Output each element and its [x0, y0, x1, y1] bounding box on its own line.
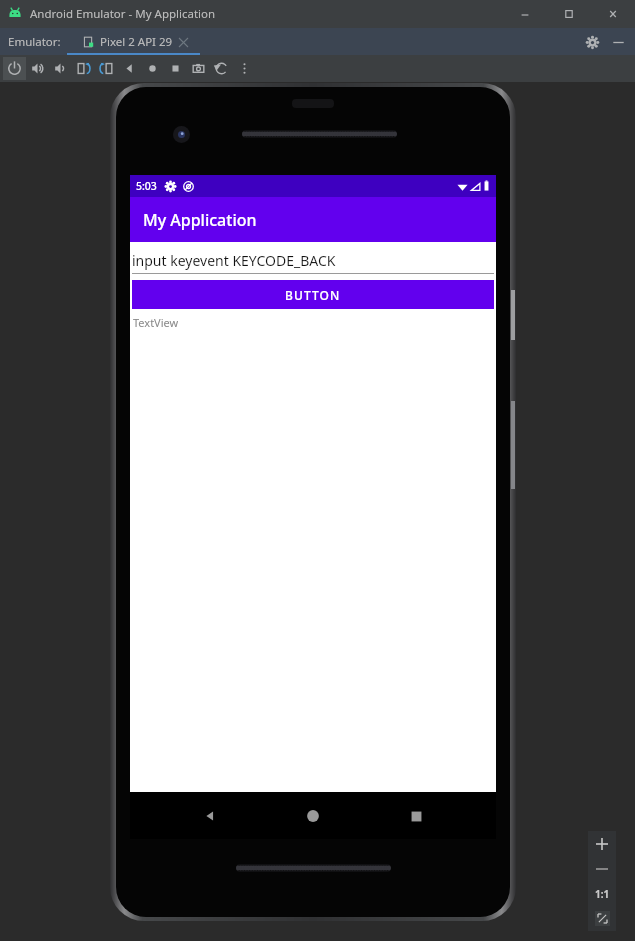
button[interactable]: Volume down [49, 57, 72, 80]
button[interactable]: Volume up [26, 57, 49, 80]
button[interactable]: Maximize [547, 0, 591, 28]
button[interactable]: Minimize [503, 0, 547, 28]
button[interactable]: Hide [605, 29, 631, 55]
button[interactable]: More [233, 57, 256, 80]
button[interactable]: Home [290, 793, 336, 839]
button[interactable]: Pixel 2 API 29 [83, 28, 188, 55]
staticText: Pixel 2 API 29 [100, 34, 173, 50]
button[interactable]: Close [591, 0, 635, 28]
staticText: Emulator: [8, 34, 61, 50]
staticText: 1:1 [595, 887, 610, 901]
button[interactable]: input keyevent KEYCODE_BACK [132, 248, 494, 274]
button[interactable]: Rotate right [95, 57, 118, 80]
button[interactable]: Home [141, 57, 164, 80]
staticText: TextView [133, 315, 179, 330]
button[interactable]: Settings [579, 29, 605, 55]
button[interactable]: History [210, 57, 233, 80]
staticText: BUTTON [285, 287, 341, 303]
button[interactable]: Back [118, 57, 141, 80]
button[interactable]: Take screenshot [187, 57, 210, 80]
button[interactable]: Back [187, 793, 233, 839]
button[interactable]: Actual size [588, 881, 616, 906]
button[interactable]: Overview [393, 793, 439, 839]
staticText: input keyevent KEYCODE_BACK [132, 251, 336, 270]
button[interactable]: Overview [164, 57, 187, 80]
button[interactable]: Fit to window [588, 906, 616, 931]
button[interactable]: BUTTON [132, 280, 494, 309]
button[interactable]: Zoom out [588, 856, 616, 881]
button[interactable]: Rotate left [72, 57, 95, 80]
staticText: Android Emulator - My Application [30, 6, 216, 22]
button[interactable]: Power [3, 57, 26, 80]
button[interactable]: Zoom in [588, 831, 616, 856]
staticText: 5:03 [136, 179, 157, 193]
staticText: My Application [143, 209, 257, 231]
